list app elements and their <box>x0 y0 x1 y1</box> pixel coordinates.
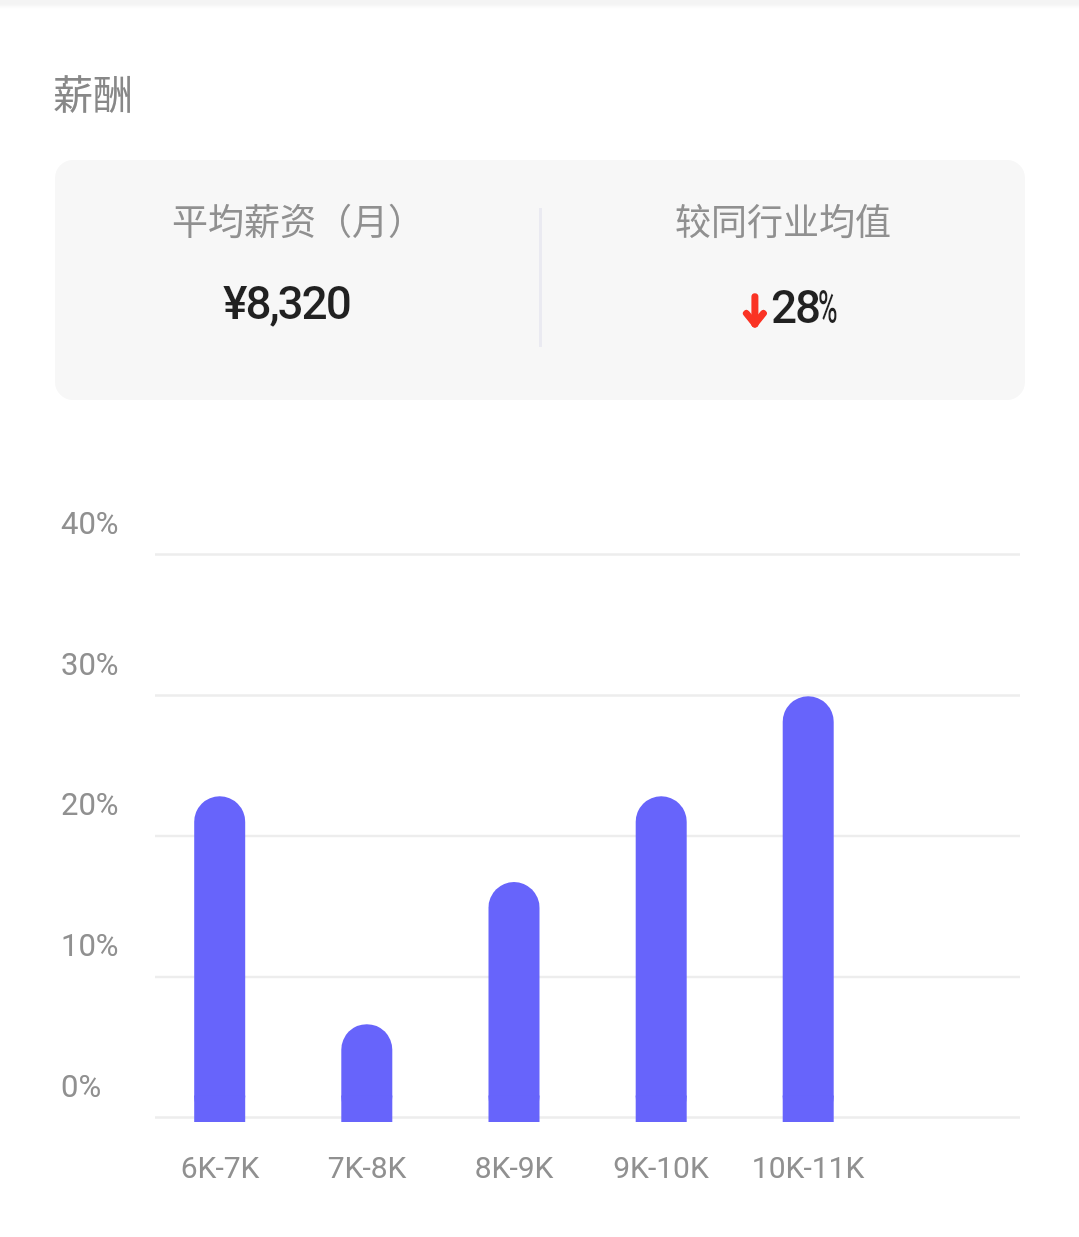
staticText: 40% <box>61 505 171 541</box>
staticText: 较同行业均值 <box>675 193 892 245</box>
staticText: 28 <box>771 280 820 334</box>
button[interactable]: 9K-10K <box>571 1140 751 1196</box>
button[interactable]: 8K-9K <box>424 1140 604 1196</box>
button[interactable]: 6K-7K <box>130 1140 310 1196</box>
staticText: 30% <box>61 646 171 682</box>
staticText: 7K-8K <box>277 1150 457 1185</box>
other: Below the industry average <box>735 290 767 332</box>
staticText: 0% <box>61 1068 171 1104</box>
staticText: 10K-11K <box>718 1150 898 1185</box>
staticText: 10% <box>61 927 171 963</box>
staticText: 9K-10K <box>571 1150 751 1185</box>
staticText: 20% <box>61 786 171 822</box>
staticText: % <box>818 280 837 334</box>
button[interactable]: 10K-11K <box>718 1140 898 1196</box>
button[interactable]: 7K-8K <box>277 1140 457 1196</box>
staticText: 薪酬 <box>53 63 133 121</box>
staticText: 8K-9K <box>424 1150 604 1185</box>
staticText: 6K-7K <box>130 1150 310 1185</box>
button[interactable]: 平均薪资（月） <box>55 160 1025 400</box>
staticText: ¥8,320 <box>223 276 350 330</box>
staticText: 平均薪资（月） <box>172 193 425 245</box>
